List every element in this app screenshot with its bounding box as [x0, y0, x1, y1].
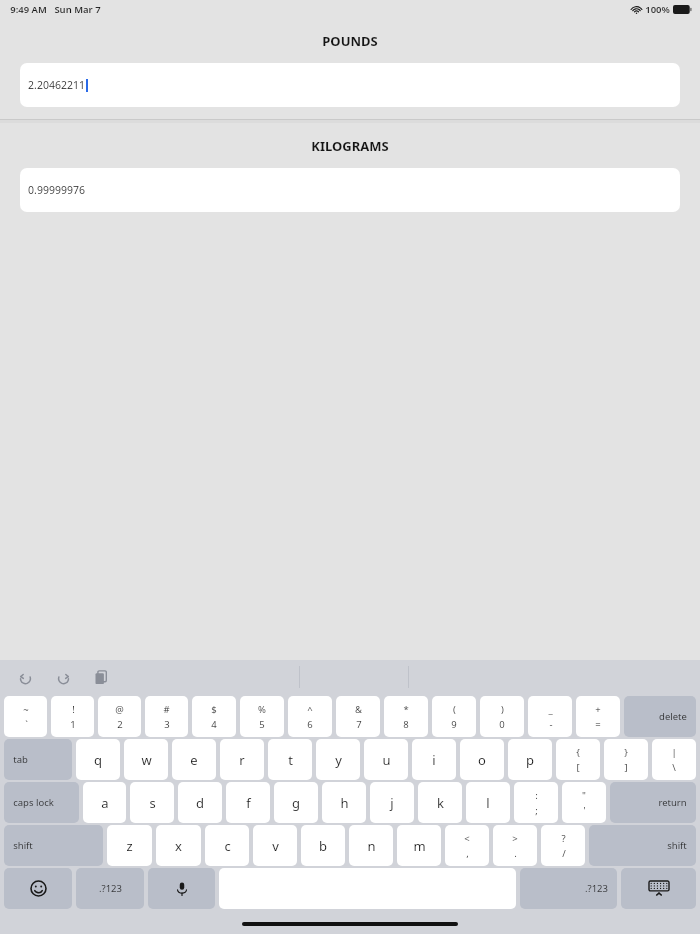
- button[interactable]: >: [493, 825, 537, 866]
- button[interactable]: z: [107, 825, 152, 866]
- staticText: c: [224, 837, 231, 855]
- staticText: 0.99999976: [28, 183, 85, 197]
- staticText: q: [94, 751, 102, 769]
- staticText: }: [624, 746, 628, 759]
- staticText: 5: [259, 718, 265, 731]
- staticText: 3: [164, 718, 170, 731]
- staticText: s: [149, 794, 156, 812]
- staticText: w: [141, 751, 152, 769]
- button[interactable]: 2.20462211: [20, 63, 680, 107]
- staticText: j: [390, 794, 394, 812]
- button[interactable]: _: [528, 696, 572, 737]
- button[interactable]: }: [604, 739, 648, 780]
- button[interactable]: (: [432, 696, 476, 737]
- staticText: z: [126, 837, 133, 855]
- button[interactable]: Redo: [50, 664, 76, 690]
- button[interactable]: Paste: [88, 664, 114, 690]
- button[interactable]: <: [445, 825, 489, 866]
- button[interactable]: shift: [4, 825, 103, 866]
- staticText: 2: [117, 718, 123, 731]
- button[interactable]: $: [192, 696, 236, 737]
- button[interactable]: t: [268, 739, 312, 780]
- staticText: 0: [499, 718, 505, 731]
- button[interactable]: x: [156, 825, 201, 866]
- button[interactable]: ?: [541, 825, 585, 866]
- button[interactable]: v: [253, 825, 297, 866]
- staticText: y: [335, 751, 342, 769]
- staticText: return: [658, 796, 687, 809]
- button[interactable]: .?123: [520, 868, 617, 909]
- button[interactable]: Emoji: [4, 868, 72, 909]
- staticText: =: [595, 718, 601, 731]
- button[interactable]: delete: [624, 696, 696, 737]
- button[interactable]: a: [83, 782, 126, 823]
- button[interactable]: u: [364, 739, 408, 780]
- button[interactable]: h: [322, 782, 366, 823]
- button[interactable]: r: [220, 739, 264, 780]
- staticText: f: [246, 794, 251, 812]
- staticText: <: [464, 832, 470, 845]
- button[interactable]: y: [316, 739, 360, 780]
- button[interactable]: s: [130, 782, 174, 823]
- button[interactable]: q: [76, 739, 120, 780]
- staticText: -: [549, 718, 553, 731]
- button[interactable]: f: [226, 782, 270, 823]
- button[interactable]: %: [240, 696, 284, 737]
- button[interactable]: w: [124, 739, 168, 780]
- staticText: 4: [211, 718, 217, 731]
- staticText: >: [512, 832, 518, 845]
- button[interactable]: m: [397, 825, 441, 866]
- button[interactable]: !: [51, 696, 94, 737]
- staticText: !: [72, 703, 75, 716]
- button[interactable]: i: [412, 739, 456, 780]
- staticText: +: [595, 703, 601, 716]
- staticText: b: [319, 837, 327, 855]
- button[interactable]: ": [562, 782, 606, 823]
- staticText: 8: [403, 718, 409, 731]
- staticText: e: [190, 751, 198, 769]
- button[interactable]: n: [349, 825, 393, 866]
- button[interactable]: b: [301, 825, 345, 866]
- button[interactable]: .?123: [76, 868, 144, 909]
- staticText: 100%: [645, 3, 670, 16]
- button[interactable]: *: [384, 696, 428, 737]
- staticText: shift: [667, 839, 687, 852]
- staticText: 9:49 AM: [10, 3, 47, 16]
- button[interactable]: d: [178, 782, 222, 823]
- button[interactable]: return: [610, 782, 696, 823]
- button[interactable]: caps lock: [4, 782, 79, 823]
- button[interactable]: l: [466, 782, 510, 823]
- button[interactable]: +: [576, 696, 620, 737]
- button[interactable]: g: [274, 782, 318, 823]
- button[interactable]: {: [556, 739, 600, 780]
- button[interactable]: :: [514, 782, 558, 823]
- staticText: %: [258, 703, 266, 716]
- button[interactable]: o: [460, 739, 504, 780]
- button[interactable]: |: [652, 739, 696, 780]
- button[interactable]: Dictation: [148, 868, 215, 909]
- button[interactable]: @: [98, 696, 141, 737]
- button[interactable]: #: [145, 696, 188, 737]
- button[interactable]: Hide keyboard: [621, 868, 696, 909]
- staticText: g: [292, 794, 300, 812]
- staticText: [: [576, 761, 580, 774]
- button[interactable]: ): [480, 696, 524, 737]
- button[interactable]: e: [172, 739, 216, 780]
- staticText: l: [486, 794, 490, 812]
- button[interactable]: j: [370, 782, 414, 823]
- button[interactable]: tab: [4, 739, 72, 780]
- button[interactable]: Undo: [12, 664, 38, 690]
- staticText: tab: [13, 753, 28, 766]
- button[interactable]: k: [418, 782, 462, 823]
- button[interactable]: ~: [4, 696, 47, 737]
- button[interactable]: 0.99999976: [20, 168, 680, 212]
- button[interactable]: p: [508, 739, 552, 780]
- staticText: ^: [307, 703, 313, 716]
- staticText: ;: [535, 804, 538, 817]
- button[interactable]: &: [336, 696, 380, 737]
- button[interactable]: ^: [288, 696, 332, 737]
- staticText: m: [413, 837, 426, 855]
- button[interactable]: shift: [589, 825, 696, 866]
- button[interactable]: c: [205, 825, 249, 866]
